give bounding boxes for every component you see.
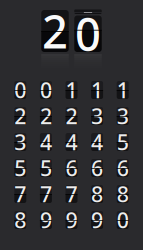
staticText: 8 xyxy=(14,206,26,234)
staticText: 4 xyxy=(65,128,77,156)
staticText: 7 xyxy=(14,180,26,208)
staticText: 2 xyxy=(14,102,26,130)
staticText: 5 xyxy=(117,128,129,156)
staticText: 0 xyxy=(117,206,129,234)
staticText: 7 xyxy=(40,180,52,208)
staticText: 1 xyxy=(65,76,77,104)
staticText: 8 xyxy=(91,180,103,208)
staticText: 9 xyxy=(65,206,77,234)
staticText: 7 xyxy=(65,180,77,208)
staticText: 9 xyxy=(91,206,103,234)
staticText: 1 xyxy=(91,76,103,104)
staticText: 9 xyxy=(40,206,52,234)
staticText: 6 xyxy=(117,154,129,182)
staticText: 2 xyxy=(42,1,68,61)
staticText: 3 xyxy=(91,102,103,130)
staticText: 3 xyxy=(14,128,26,156)
staticText: 8 xyxy=(117,180,129,208)
staticText: 5 xyxy=(40,154,52,182)
staticText: 4 xyxy=(40,128,52,156)
staticText: 0 xyxy=(14,76,26,104)
staticText: 1 xyxy=(117,76,129,104)
staticText: 2 xyxy=(40,102,52,130)
staticText: 6 xyxy=(65,154,77,182)
staticText: 0 xyxy=(75,4,101,64)
staticText: 5 xyxy=(14,154,26,182)
staticText: 2 xyxy=(65,102,77,130)
staticText: 6 xyxy=(91,154,103,182)
staticText: 4 xyxy=(91,128,103,156)
staticText: 0 xyxy=(40,76,52,104)
staticText: 3 xyxy=(117,102,129,130)
